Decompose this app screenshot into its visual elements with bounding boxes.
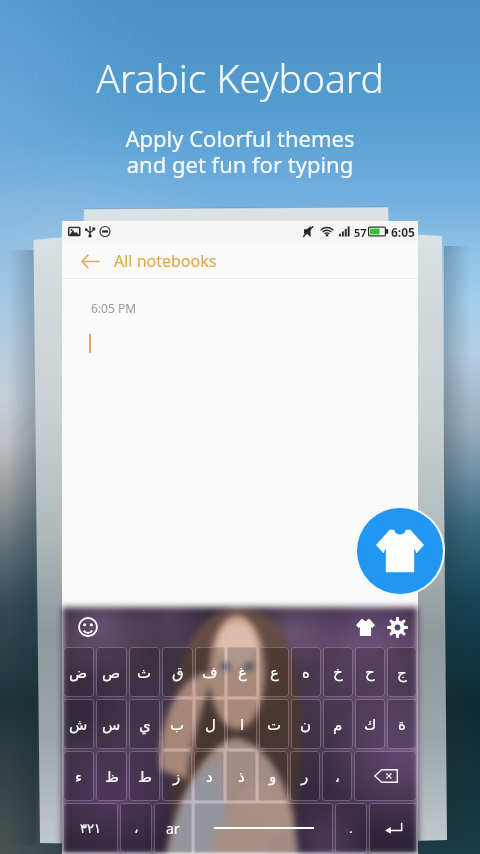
staticText: ر [301, 768, 309, 785]
button[interactable]: ش [63, 699, 94, 749]
button[interactable]: ظ [96, 751, 127, 801]
staticText: All notebooks [114, 250, 217, 272]
staticText: ك [364, 716, 377, 733]
staticText: ز [173, 768, 181, 785]
staticText: 6:05 [391, 224, 415, 240]
button[interactable]: ه [291, 647, 321, 697]
staticText: ط [138, 768, 152, 785]
staticText: غ [238, 664, 247, 681]
staticText: ٣٢١ [80, 821, 101, 836]
staticText: ء [75, 768, 83, 785]
staticText: ض [69, 664, 88, 681]
button[interactable]: ء [63, 751, 94, 801]
staticText: و [269, 768, 277, 785]
button[interactable]: Enter [369, 803, 417, 853]
button[interactable]: Emoji [68, 607, 107, 646]
button[interactable]: ن [291, 699, 321, 749]
button[interactable]: ر [290, 751, 320, 801]
button[interactable]: ف [195, 647, 225, 697]
staticText: Apply Colorful themes and get fun for ty… [125, 123, 355, 180]
staticText: د [206, 768, 213, 785]
button[interactable]: س [96, 699, 127, 749]
button[interactable]: د [194, 751, 224, 801]
button[interactable]: ، [120, 803, 152, 853]
staticText: ث [137, 664, 152, 681]
button[interactable]: ط [129, 751, 160, 801]
button[interactable]: ب [162, 699, 193, 749]
button[interactable]: . [335, 803, 367, 853]
button[interactable]: ٣٢١ [63, 803, 118, 853]
button[interactable]: ا [227, 699, 257, 749]
button[interactable]: ج [387, 647, 417, 697]
staticText: ، [134, 820, 139, 836]
button[interactable]: ي [129, 699, 160, 749]
button[interactable]: ق [162, 647, 193, 697]
staticText: 57 [354, 225, 367, 240]
staticText: ذ [238, 768, 245, 785]
staticText: ظ [105, 768, 119, 785]
button[interactable]: Back [68, 243, 112, 279]
staticText: 6:05 PM [91, 300, 137, 316]
button[interactable]: ة [387, 699, 417, 749]
button[interactable]: ك [355, 699, 385, 749]
staticText: ح [365, 664, 375, 681]
button[interactable]: ar [154, 803, 192, 853]
button[interactable]: م [323, 699, 353, 749]
staticText: ه [302, 664, 310, 681]
staticText: ا [240, 716, 245, 733]
staticText: ، [335, 768, 340, 785]
button[interactable]: ل [195, 699, 225, 749]
staticText: ل [205, 716, 216, 733]
button[interactable]: ض [63, 647, 94, 697]
button[interactable]: Space [194, 803, 333, 853]
staticText: ة [398, 716, 406, 733]
staticText: ب [170, 716, 185, 733]
staticText: ar [166, 819, 180, 838]
button[interactable]: ذ [226, 751, 256, 801]
button[interactable]: Backspace [354, 751, 417, 801]
staticText: م [333, 716, 343, 733]
button[interactable]: ح [355, 647, 385, 697]
button[interactable]: ع [259, 647, 289, 697]
staticText: ف [202, 664, 218, 681]
button[interactable]: و [258, 751, 288, 801]
button[interactable]: خ [323, 647, 353, 697]
staticText: ج [397, 664, 407, 681]
staticText: ت [267, 716, 282, 733]
staticText: ص [102, 664, 121, 681]
button[interactable]: Change theme [355, 506, 445, 596]
button[interactable]: Theme [350, 612, 380, 642]
button[interactable]: ص [96, 647, 127, 697]
button[interactable]: ز [162, 751, 192, 801]
button[interactable]: ، [322, 751, 352, 801]
staticText: س [102, 716, 121, 733]
staticText: ق [172, 664, 184, 681]
staticText: . [349, 819, 353, 837]
button[interactable]: غ [227, 647, 257, 697]
staticText: ع [270, 664, 279, 681]
staticText: ن [300, 716, 312, 733]
staticText: خ [333, 664, 343, 681]
staticText: ش [69, 716, 88, 733]
staticText: ي [139, 716, 151, 733]
button[interactable]: Settings [382, 612, 412, 642]
button[interactable]: ث [129, 647, 160, 697]
staticText: Arabic Keyboard [96, 51, 384, 104]
button[interactable]: ت [259, 699, 289, 749]
